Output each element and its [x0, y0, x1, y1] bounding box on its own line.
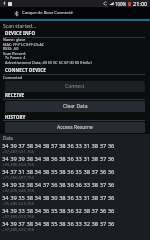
staticText: Name: glove [3, 37, 26, 42]
staticText: 100% [115, 1, 127, 7]
staticText: +95,480,624,766 [2, 201, 35, 207]
button[interactable]: 34 37 31 38 34 38 35 38 36 35 38 37 36 3… [0, 167, 150, 180]
staticText: 34 39 39 38 34 38 36 38 36 33 31 38 37 3… [2, 155, 115, 163]
staticText: RSSI: -60 [3, 46, 19, 51]
staticText: +92,476,646,766 [2, 188, 35, 194]
staticText: Advertisement Data: 40 65 6C 6C 6F 00 00… [3, 60, 92, 65]
staticText: Connected [3, 75, 23, 80]
staticText: +97,485,632,766 [2, 227, 35, 233]
staticText: Scan Record: [3, 51, 26, 56]
button[interactable]: 34 39 39 38 34 38 36 38 36 33 31 38 37 3… [0, 154, 150, 167]
staticText: HISTORY [5, 114, 26, 120]
button[interactable]: Clear Data [5, 101, 145, 112]
staticText: Data [3, 135, 13, 141]
staticText: CONNECT DEVICE [5, 67, 46, 73]
button[interactable]: 34 39 37 38 34 38 37 38 36 33 31 38 37 3… [0, 141, 150, 154]
staticText: +97,487,631,766 [2, 149, 35, 155]
staticText: +71,466,687,766 [2, 175, 35, 181]
staticText: Clear Data [63, 103, 88, 110]
staticText: +93,486,624,766 [2, 162, 35, 168]
staticText: RECEIVE [5, 92, 25, 98]
staticText: 34 39 35 38 34 38 30 38 36 33 31 38 37 3… [2, 194, 115, 202]
staticText: Connect [65, 83, 85, 90]
button[interactable]: 34 39 32 38 34 37 36 38 36 36 33 38 37 3… [0, 180, 150, 193]
staticText: 34 39 33 38 34 36 35 38 36 32 38 37 36 3… [2, 207, 115, 215]
staticText: MAC: FF:F1:C9:FF:C6:AC [3, 42, 45, 47]
button[interactable]: 34 39 33 38 34 36 35 38 36 32 38 37 36 3… [0, 206, 150, 219]
staticText: Scan started... [3, 23, 37, 30]
button[interactable]: Access Resume [5, 122, 145, 133]
button[interactable]: 34 39 37 38 34 38 35 38 36 33 32 38 37 3… [0, 219, 150, 232]
staticText: +97,465,632,766 [2, 214, 35, 220]
button[interactable]: Connect [5, 81, 145, 92]
staticText: 34 37 31 38 34 38 35 38 36 35 38 37 36 3… [2, 168, 115, 176]
staticText: 34 39 37 38 34 38 37 38 36 33 31 38 37 3… [2, 142, 115, 150]
staticText: Tx Power: 4 [3, 55, 26, 60]
staticText: 34 39 32 38 34 37 36 38 36 36 33 38 37 3… [2, 181, 115, 189]
staticText: Access Resume [57, 124, 93, 131]
staticText: DEVICE INFO [5, 30, 36, 36]
staticText: 21:00 [133, 0, 148, 7]
other: Bluetooth [13, 10, 20, 17]
staticText: Casque de Bose Connecté [22, 10, 73, 16]
staticText: 34 39 37 38 34 38 35 38 36 33 32 38 37 3… [2, 220, 115, 228]
button[interactable]: 34 39 35 38 34 38 30 38 36 33 31 38 37 3… [0, 193, 150, 206]
